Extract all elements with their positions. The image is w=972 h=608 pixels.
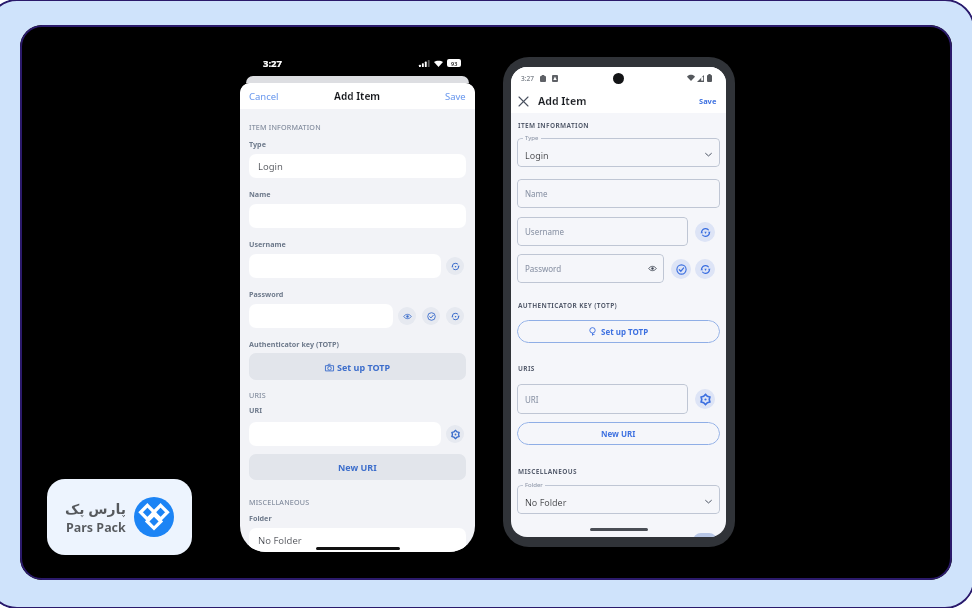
button[interactable]: No Folder	[517, 485, 720, 514]
button[interactable]: Save	[445, 90, 466, 103]
button[interactable]: Generate password	[695, 259, 715, 279]
staticText: No Folder	[258, 534, 302, 547]
staticText: پارس پک	[65, 499, 127, 518]
staticText: AUTHENTICATOR KEY (TOTP)	[518, 301, 618, 310]
button[interactable]: Generate password	[446, 307, 464, 325]
staticText: URIS	[249, 390, 266, 400]
button[interactable]: Login	[249, 154, 466, 178]
staticText: ITEM INFORMATION	[249, 122, 321, 132]
button[interactable]: Username	[517, 217, 688, 246]
staticText: URI	[249, 405, 262, 415]
staticText: URI	[525, 394, 539, 405]
button[interactable]: Set up TOTP	[249, 353, 466, 380]
staticText: Login	[258, 160, 283, 173]
staticText: Set up TOTP	[337, 361, 391, 373]
button[interactable]: Generate username	[695, 222, 715, 242]
staticText: Name	[249, 189, 271, 199]
button[interactable]: URI	[517, 384, 688, 414]
button[interactable]: Name	[517, 179, 720, 208]
button[interactable]: New URI	[249, 454, 466, 480]
button[interactable]: Add	[693, 533, 717, 537]
button[interactable]: Password	[517, 254, 664, 283]
staticText: New URI	[601, 428, 636, 439]
staticText: Folder	[249, 513, 272, 523]
button[interactable]: Generate username	[446, 257, 464, 275]
button[interactable]: New URI	[517, 422, 720, 445]
button[interactable]: Login	[517, 138, 720, 167]
staticText: MISCELLANEOUS	[518, 467, 577, 476]
staticText: 93	[451, 60, 458, 67]
staticText: Add Item	[538, 94, 587, 108]
staticText: Add Item	[334, 89, 381, 103]
button[interactable]: Pars Pack	[47, 479, 192, 555]
button[interactable]: Show password	[398, 307, 416, 325]
staticText: No Folder	[525, 496, 567, 508]
staticText: 3:27	[263, 57, 282, 70]
staticText: MISCELLANEOUS	[249, 497, 310, 507]
staticText: New URI	[338, 461, 377, 473]
staticText: Type	[249, 139, 266, 149]
staticText: Username	[249, 239, 286, 249]
button[interactable]: URI options	[446, 425, 464, 443]
staticText: Pars Pack	[66, 519, 126, 536]
staticText: Name	[525, 188, 548, 199]
staticText: Login	[525, 149, 549, 161]
staticText: ITEM INFORMATION	[518, 121, 590, 130]
button[interactable]: Close	[515, 93, 531, 109]
button[interactable]: Set up TOTP	[517, 320, 720, 343]
button[interactable]: Check password	[671, 259, 691, 279]
staticText: Authenticator key (TOTP)	[249, 339, 339, 349]
button[interactable]: Cancel	[249, 90, 279, 103]
staticText: 3:27	[521, 74, 534, 83]
staticText: Password	[525, 263, 562, 274]
staticText: URIS	[518, 364, 535, 373]
staticText: Set up TOTP	[601, 326, 649, 337]
button[interactable]: URI options	[695, 389, 715, 409]
button[interactable]: Save	[699, 96, 717, 106]
button[interactable]: No Folder	[249, 528, 466, 552]
staticText: Folder	[525, 481, 543, 489]
staticText: Username	[525, 226, 564, 237]
staticText: Type	[525, 134, 539, 142]
button[interactable]: Check password	[422, 307, 440, 325]
staticText: Password	[249, 289, 284, 299]
